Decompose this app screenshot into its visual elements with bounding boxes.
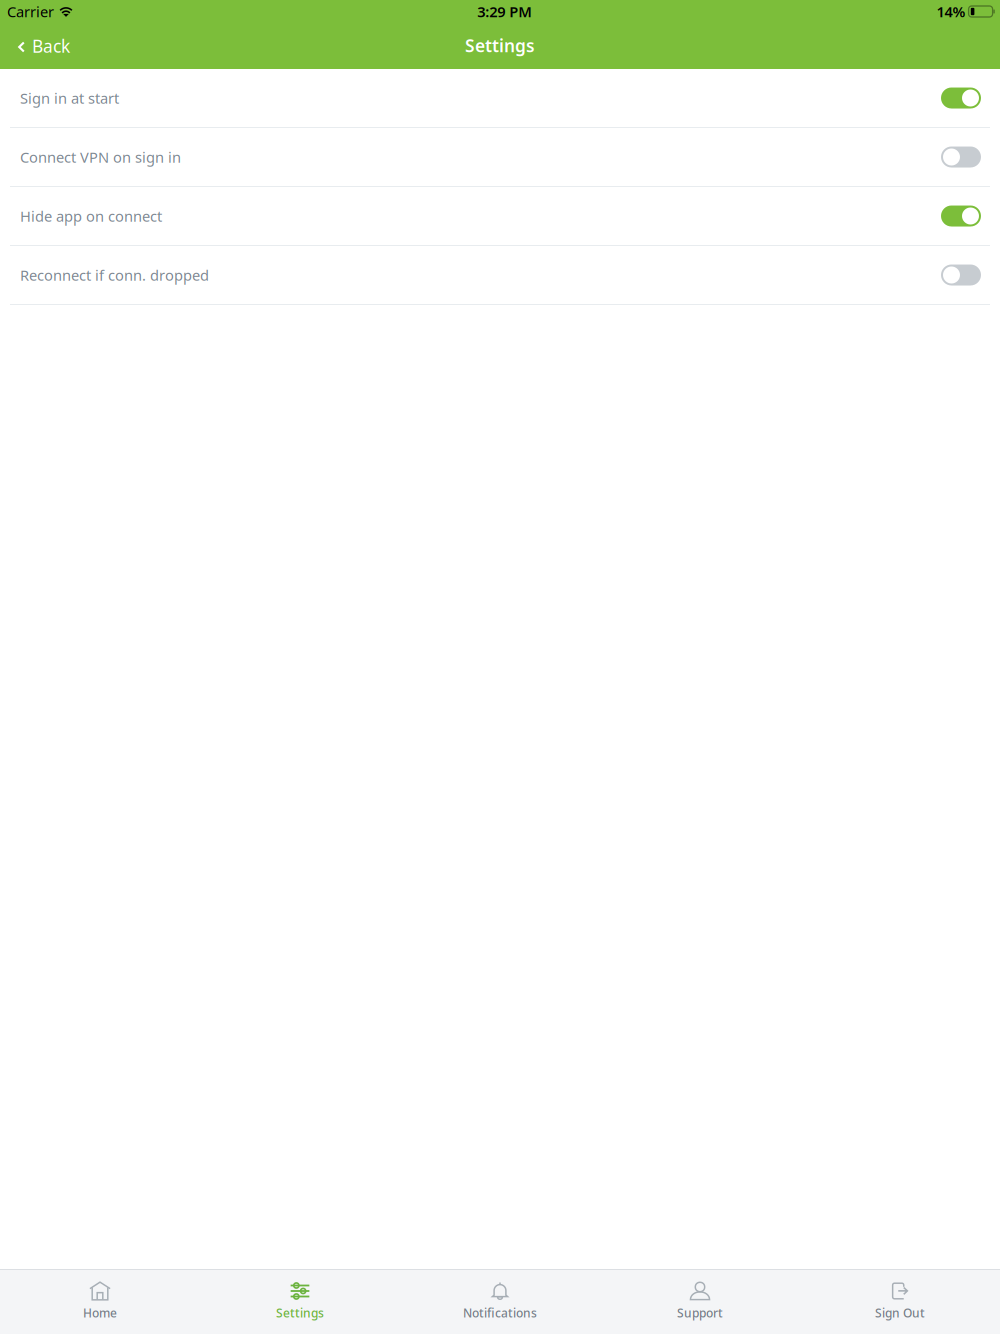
button[interactable]: Reconnect if conn. dropped, off	[941, 264, 981, 285]
staticText: Notifications	[463, 1305, 537, 1321]
button[interactable]: Connect VPN on sign in, off	[941, 146, 981, 167]
button[interactable]: Support	[600, 1270, 800, 1334]
button[interactable]: Hide app on connect, on	[941, 205, 981, 226]
button[interactable]: Connect VPN on sign in	[0, 128, 1000, 186]
button[interactable]: Hide app on connect	[0, 187, 1000, 245]
button[interactable]: Notifications	[400, 1270, 600, 1334]
staticText: Carrier	[7, 2, 54, 21]
staticText: Connect VPN on sign in	[20, 147, 181, 167]
button[interactable]: Reconnect if conn. dropped	[0, 246, 1000, 304]
staticText: Reconnect if conn. dropped	[20, 265, 209, 285]
staticText: Sign in at start	[20, 88, 119, 108]
button[interactable]: Sign Out	[800, 1270, 1000, 1334]
button[interactable]: Settings	[200, 1270, 400, 1334]
staticText: Hide app on connect	[20, 206, 162, 226]
staticText: Sign Out	[875, 1305, 925, 1321]
staticText: Settings	[465, 34, 535, 57]
staticText: Back	[32, 34, 70, 57]
button[interactable]: Sign in at start	[0, 69, 1000, 127]
staticText: 14%	[937, 2, 966, 21]
button[interactable]: Home	[0, 1270, 200, 1334]
staticText: 3:29 PM	[477, 2, 532, 21]
button[interactable]: Back	[0, 25, 84, 69]
staticText: Settings	[276, 1305, 324, 1321]
staticText: Support	[677, 1305, 723, 1321]
staticText: Home	[83, 1305, 117, 1321]
button[interactable]: Sign in at start, on	[941, 87, 981, 108]
